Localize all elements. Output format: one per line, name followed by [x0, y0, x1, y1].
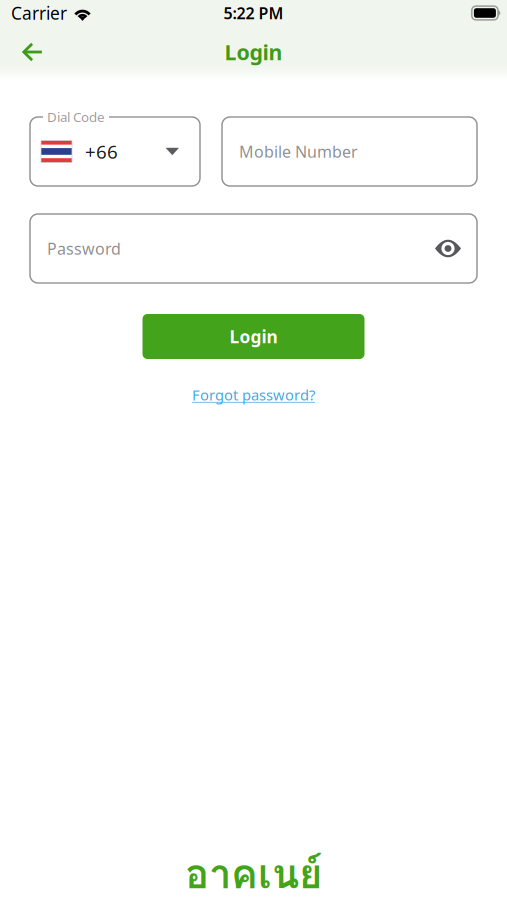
staticText: Mobile Number: [239, 141, 358, 162]
staticText: Carrier: [11, 1, 67, 24]
button[interactable]: Mobile Number: [222, 117, 477, 186]
button[interactable]: +66: [30, 117, 200, 186]
staticText: +66: [85, 139, 118, 164]
button[interactable]: Login: [142, 314, 364, 359]
button[interactable]: Password: [30, 215, 429, 282]
button[interactable]: Forgot password?: [192, 385, 315, 404]
button[interactable]: Back: [9, 30, 57, 74]
staticText: Login: [229, 325, 277, 348]
staticText: Forgot password?: [192, 385, 315, 404]
button[interactable]: Show password: [429, 228, 467, 268]
staticText: Password: [47, 238, 121, 259]
staticText: Login: [224, 38, 282, 66]
staticText: อาคเนย์: [185, 843, 322, 900]
staticText: 5:22 PM: [223, 2, 283, 24]
staticText: Dial Code: [47, 108, 105, 126]
